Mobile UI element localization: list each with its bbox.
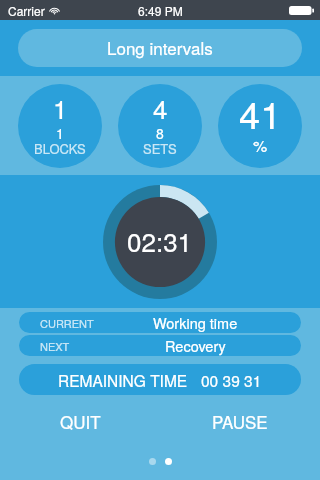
staticText: Long intervals	[107, 35, 213, 59]
button[interactable]: Long intervals	[18, 29, 302, 67]
staticText: SETS	[143, 139, 177, 158]
staticText: 6:49 PM	[138, 2, 183, 19]
button[interactable]: CURRENT	[19, 312, 301, 333]
staticText: Recovery	[165, 335, 226, 356]
button[interactable]: NEXT	[19, 335, 301, 356]
staticText: REMAINING TIME	[58, 369, 188, 391]
button[interactable]: REMAINING TIME	[19, 364, 301, 395]
staticText: 1	[56, 123, 64, 143]
staticText: 02:31	[127, 222, 193, 259]
staticText: Carrier	[8, 2, 45, 19]
staticText: PAUSE	[212, 409, 268, 433]
staticText: CURRENT	[40, 315, 94, 331]
staticText: %	[253, 134, 268, 157]
staticText: NEXT	[40, 338, 70, 354]
button[interactable]: 1	[18, 84, 102, 168]
staticText: 8	[156, 123, 164, 143]
staticText: 00 39 31	[201, 369, 262, 391]
staticText: 4	[153, 89, 168, 126]
button[interactable]: 4	[118, 84, 202, 168]
staticText: 41	[239, 85, 282, 139]
staticText: Working time	[153, 312, 238, 333]
button[interactable]: 41	[218, 84, 302, 168]
button[interactable]: QUIT	[0, 406, 160, 436]
staticText: BLOCKS	[34, 139, 86, 158]
other: Battery	[289, 5, 314, 16]
staticText: 1	[53, 89, 68, 126]
button[interactable]: PAUSE	[160, 406, 320, 436]
staticText: QUIT	[60, 409, 101, 433]
